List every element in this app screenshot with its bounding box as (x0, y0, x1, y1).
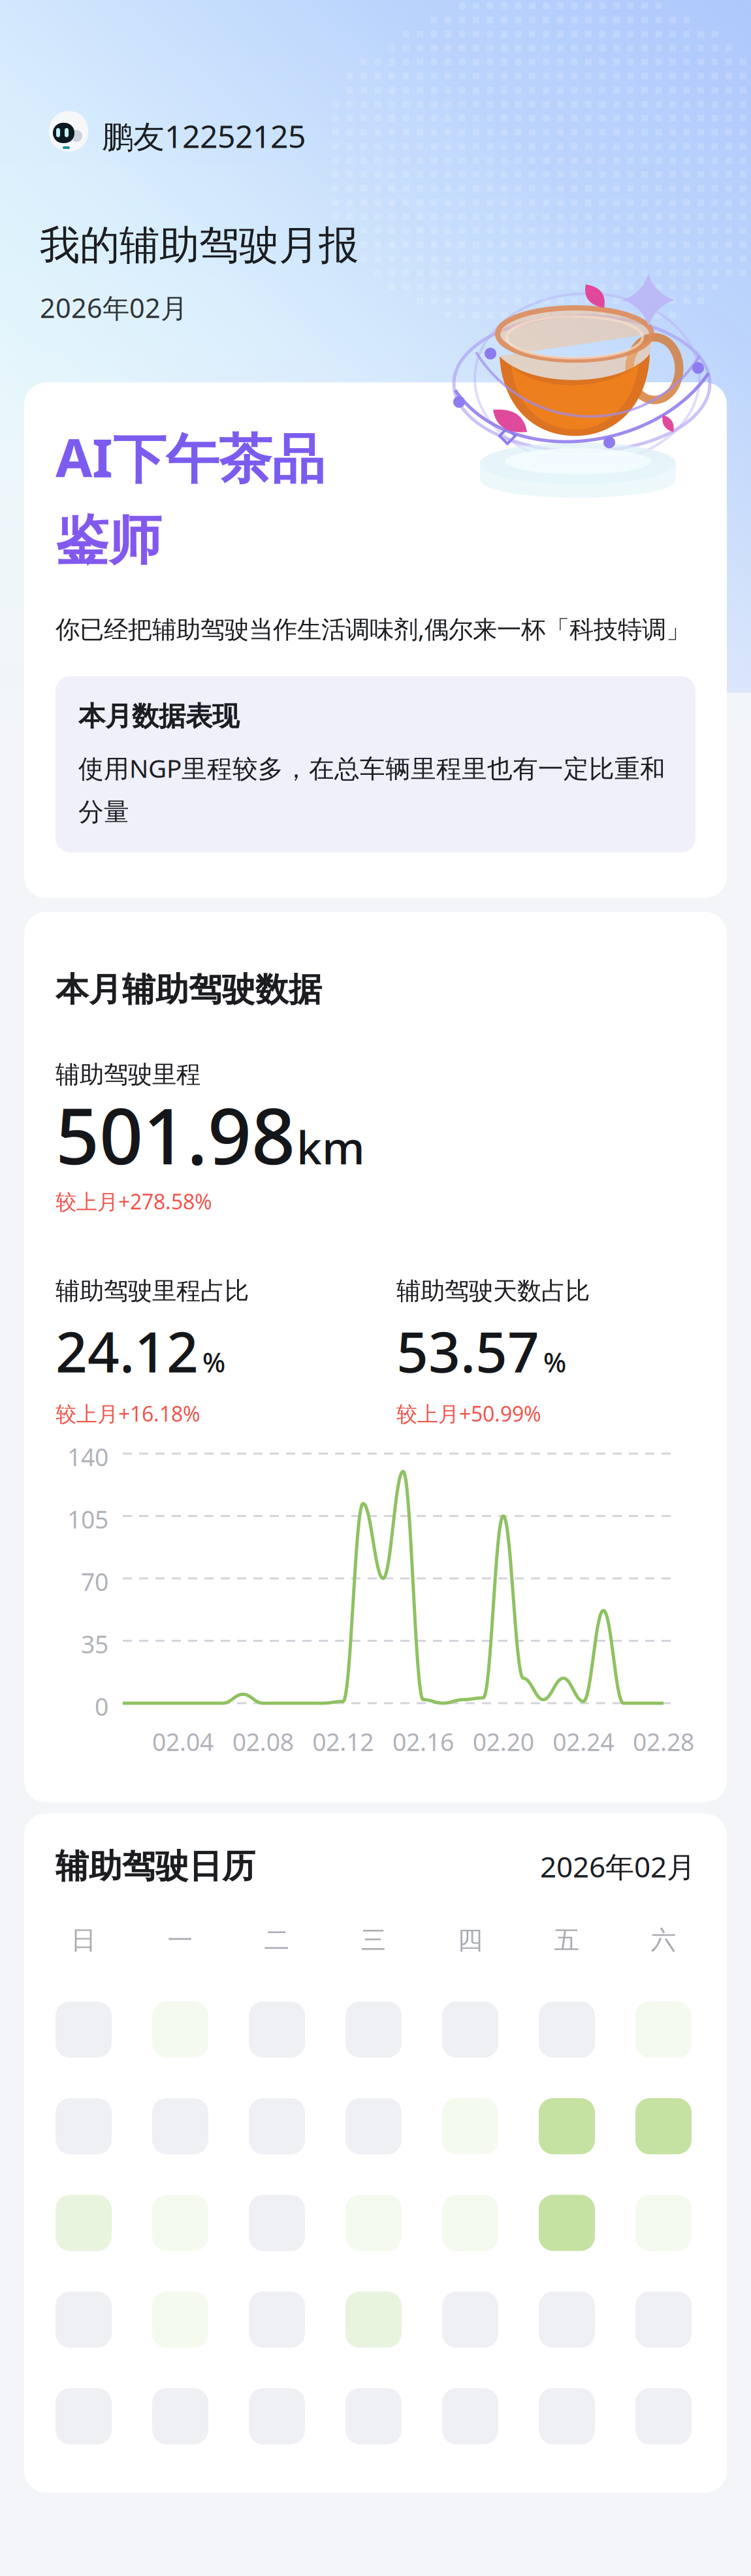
staticText: 辅助驾驶里程占比 (56, 1276, 249, 1306)
staticText: 辅助驾驶日历 (56, 1846, 255, 1887)
staticText: 一 (168, 1925, 193, 1956)
staticText: 02.16 (392, 1725, 454, 1758)
staticText: 本月辅助驾驶数据 (56, 969, 322, 1010)
staticText: 140 (67, 1441, 108, 1473)
staticText: 四 (457, 1925, 483, 1956)
staticText: 105 (67, 1503, 108, 1535)
staticText: 二 (264, 1925, 290, 1956)
staticText: 2026年02月 (540, 1847, 695, 1885)
staticText: 0 (95, 1690, 108, 1723)
staticText: 02.08 (232, 1725, 294, 1758)
staticText: 02.24 (553, 1725, 614, 1758)
staticText: 六 (651, 1925, 676, 1956)
staticText: 24.12 (56, 1314, 199, 1388)
button[interactable]: 鹏友12252125 (0, 111, 306, 161)
staticText: 02.12 (312, 1725, 374, 1758)
staticText: 辅助驾驶里程 (56, 1060, 200, 1090)
staticText: 使用NGP里程较多，在总车辆里程里也有一定比重和分量 (78, 751, 665, 828)
staticText: 501.98 (56, 1084, 295, 1185)
staticText: km (296, 1117, 365, 1177)
staticText: 02.04 (152, 1725, 214, 1758)
staticText: 35 (81, 1628, 108, 1660)
staticText: 较上月+50.99% (396, 1400, 541, 1427)
staticText: 02.28 (633, 1725, 694, 1758)
staticText: 鉴师 (56, 508, 161, 573)
staticText: 五 (554, 1925, 580, 1956)
staticText: 70 (81, 1565, 108, 1598)
staticText: 你已经把辅助驾驶当作生活调味剂,偶尔来一杯「科技特调」 (56, 612, 690, 645)
staticText: 我的辅助驾驶月报 (40, 221, 359, 270)
staticText: 日 (71, 1925, 96, 1956)
staticText: % (543, 1344, 566, 1380)
staticText: 02.20 (473, 1725, 534, 1758)
staticText: 鹏友12252125 (102, 115, 306, 157)
staticText: 53.57 (396, 1314, 539, 1388)
staticText: 三 (361, 1925, 386, 1956)
staticText: AI下午茶品 (56, 422, 325, 492)
staticText: 较上月+278.58% (56, 1187, 212, 1215)
staticText: 辅助驾驶天数占比 (396, 1276, 590, 1306)
staticText: 较上月+16.18% (56, 1400, 200, 1427)
staticText: 2026年02月 (40, 290, 187, 325)
staticText: % (202, 1344, 225, 1380)
staticText: 本月数据表现 (78, 700, 239, 733)
